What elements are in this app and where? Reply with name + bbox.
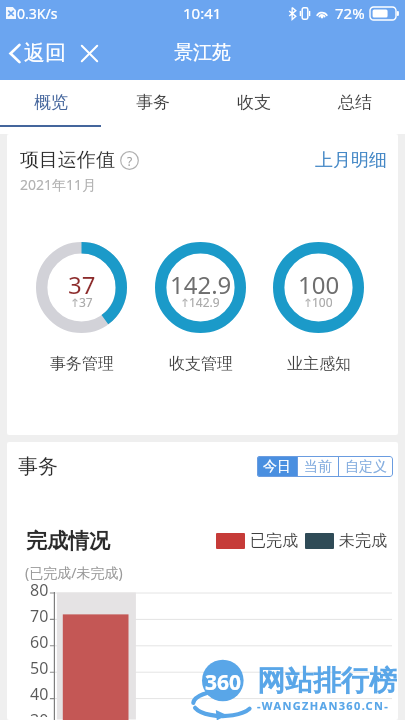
staticText: 360 bbox=[205, 668, 242, 697]
staticText: 60 bbox=[30, 631, 49, 653]
staticText: 2021年11月 bbox=[20, 175, 97, 194]
staticText: 总结 bbox=[338, 92, 372, 113]
staticText: 上月明细 bbox=[315, 149, 387, 172]
staticText: 事务管理 bbox=[50, 354, 114, 374]
staticText: 未完成 bbox=[339, 531, 387, 551]
staticText: 50 bbox=[30, 657, 49, 679]
staticText: 37 bbox=[68, 268, 96, 301]
staticText: -WANGZHAN360.CN- bbox=[257, 698, 390, 713]
staticText: 0.3K/s bbox=[17, 4, 58, 23]
staticText: 完成情况 bbox=[26, 528, 110, 554]
button[interactable]: 事务 bbox=[102, 80, 203, 125]
staticText: 142.9 bbox=[189, 294, 220, 310]
staticText: 当前 bbox=[304, 458, 332, 476]
staticText: (已完成/未完成) bbox=[25, 563, 123, 582]
staticText: 142.9 bbox=[170, 268, 232, 301]
button[interactable]: 收支 bbox=[203, 80, 304, 125]
staticText: 事务 bbox=[136, 92, 170, 113]
staticText: 100 bbox=[298, 268, 340, 301]
staticText: 自定义 bbox=[345, 458, 387, 476]
staticText: 10:41 bbox=[183, 3, 222, 23]
staticText: 已完成 bbox=[250, 531, 298, 551]
staticText: 收支管理 bbox=[169, 354, 233, 374]
staticText: 项目运作值 bbox=[20, 148, 115, 172]
staticText: 80 bbox=[30, 579, 49, 601]
staticText: 业主感知 bbox=[287, 354, 351, 374]
staticText: 72% bbox=[335, 3, 365, 23]
button[interactable]: 返回 bbox=[3, 34, 71, 72]
staticText: 今日 bbox=[263, 458, 291, 476]
button[interactable]: 上月明细 bbox=[311, 148, 389, 172]
staticText: 返回 bbox=[24, 40, 66, 66]
staticText: 100 bbox=[312, 294, 333, 310]
staticText: 网站排行榜 bbox=[257, 663, 397, 698]
staticText: 收支 bbox=[237, 92, 271, 113]
button[interactable]: 当前 bbox=[298, 456, 338, 477]
button[interactable]: 自定义 bbox=[339, 456, 393, 477]
staticText: 37 bbox=[79, 294, 93, 310]
button[interactable]: 总结 bbox=[304, 80, 405, 125]
button[interactable]: 概览 bbox=[0, 80, 102, 125]
button[interactable]: 今日 bbox=[257, 456, 297, 477]
staticText: 30 bbox=[30, 709, 49, 717]
button[interactable]: Close bbox=[72, 36, 106, 70]
staticText: 70 bbox=[30, 605, 49, 627]
staticText: 景江苑 bbox=[174, 41, 231, 65]
staticText: 概览 bbox=[34, 92, 68, 113]
staticText: 事务 bbox=[18, 454, 58, 479]
staticText: 40 bbox=[30, 683, 49, 705]
staticText: ? bbox=[127, 153, 133, 169]
